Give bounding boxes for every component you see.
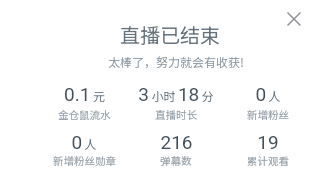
button[interactable]: 216: [160, 131, 193, 153]
staticText: 3 小时 18 分: [138, 83, 214, 105]
staticText: 19: [257, 131, 279, 153]
button[interactable]: 新增粉丝勋章: [53, 153, 116, 168]
button[interactable]: 0 人: [255, 83, 281, 105]
staticText: 216: [160, 131, 193, 153]
button[interactable]: Close: [281, 6, 307, 32]
staticText: 弹幕数: [160, 153, 192, 168]
staticText: 太棒了，努力就会有收获!: [108, 53, 244, 70]
staticText: 累计观看: [247, 153, 289, 168]
button[interactable]: 新增粉丝: [247, 107, 289, 122]
staticText: 0 人: [71, 131, 97, 153]
button[interactable]: 弹幕数: [160, 153, 192, 168]
button[interactable]: 0.1 元: [64, 83, 105, 105]
button[interactable]: 3 小时 18 分: [138, 83, 214, 105]
staticText: 新增粉丝勋章: [53, 153, 116, 168]
button[interactable]: 19: [257, 131, 279, 153]
button[interactable]: 累计观看: [247, 153, 289, 168]
button[interactable]: 0 人: [71, 131, 97, 153]
staticText: 直播已结束: [120, 20, 220, 49]
staticText: 新增粉丝: [247, 107, 289, 122]
staticText: 金仓鼠流水: [58, 107, 111, 122]
staticText: 0 人: [255, 83, 281, 105]
button[interactable]: 金仓鼠流水: [58, 107, 111, 122]
staticText: 0.1 元: [64, 83, 105, 105]
staticText: 直播时长: [155, 107, 197, 122]
button[interactable]: 直播时长: [155, 107, 197, 122]
